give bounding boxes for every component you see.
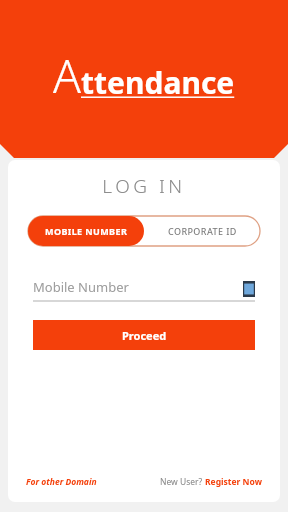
button[interactable]: CORPORATE ID (144, 216, 260, 246)
staticText: Proceed (122, 328, 167, 343)
staticText: New User? (160, 476, 205, 488)
staticText: MOBILE NUMBER (45, 225, 128, 237)
button[interactable]: Register Now (205, 476, 262, 488)
staticText: CORPORATE ID (168, 225, 237, 237)
staticText: A (53, 44, 81, 107)
button[interactable]: For other Domain (26, 476, 97, 488)
staticText: Mobile Number (33, 278, 129, 296)
button[interactable]: MOBILE NUMBER (28, 216, 144, 246)
button[interactable]: Proceed (33, 320, 255, 350)
button[interactable]: Mobile Number (33, 276, 255, 302)
staticText: ttendance (81, 62, 235, 103)
staticText: LOG IN (8, 173, 280, 199)
